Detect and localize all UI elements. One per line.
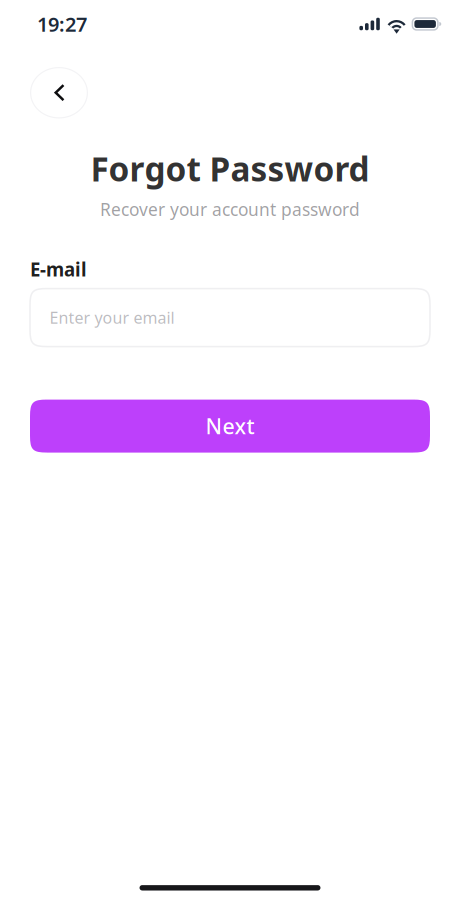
staticText: Next bbox=[205, 412, 254, 440]
staticText: 19:27 bbox=[37, 11, 87, 37]
staticText: Forgot Password bbox=[90, 146, 369, 191]
staticText: Enter your email bbox=[49, 307, 174, 328]
button[interactable]: Enter your email bbox=[30, 289, 430, 347]
staticText: E-mail bbox=[30, 257, 87, 282]
staticText: Recover your account password bbox=[100, 198, 360, 221]
button[interactable]: Next bbox=[30, 400, 430, 453]
button[interactable]: Back bbox=[30, 67, 88, 118]
